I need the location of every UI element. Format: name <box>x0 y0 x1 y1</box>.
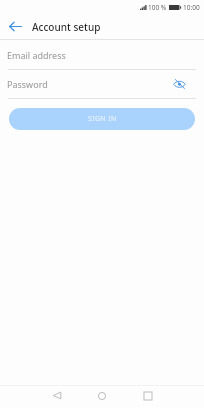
staticText: 100 % <box>148 3 167 12</box>
button[interactable]: Password <box>0 69 204 98</box>
staticText: SIGN IN <box>88 114 117 124</box>
button[interactable]: Back <box>3 14 28 39</box>
button[interactable]: SIGN IN <box>9 108 195 130</box>
staticText: Password <box>7 78 48 90</box>
button[interactable]: Email address <box>0 40 204 69</box>
button[interactable]: Home <box>90 384 113 407</box>
staticText: Account setup <box>32 20 101 34</box>
button[interactable]: Back <box>45 384 68 407</box>
staticText: Email address <box>7 49 66 61</box>
staticText: 10:00 <box>183 3 200 12</box>
button[interactable]: Recent apps <box>136 384 159 407</box>
button[interactable]: Show password <box>170 75 188 93</box>
